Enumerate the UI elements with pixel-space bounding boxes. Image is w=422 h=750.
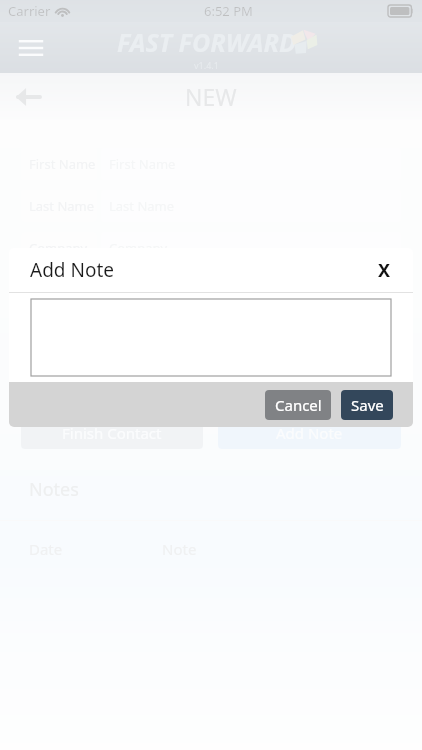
button[interactable]: Cancel (265, 390, 331, 420)
button[interactable]: Add Note (218, 416, 401, 449)
staticText: Note (162, 539, 197, 559)
staticText: Group (109, 365, 148, 383)
button[interactable]: Phone (101, 274, 401, 306)
staticText: Last Name (29, 197, 95, 215)
staticText: Date (29, 539, 63, 559)
staticText: Save (351, 395, 384, 415)
staticText: Group (29, 365, 68, 383)
staticText: Phone (29, 281, 69, 299)
staticText: Add Note (30, 257, 114, 283)
staticText: Add Note (276, 423, 343, 443)
staticText: X (378, 258, 391, 283)
staticText: v1.4.1 (194, 59, 219, 71)
staticText: Cancel (275, 395, 322, 415)
button[interactable]: Group (101, 358, 401, 390)
staticText: NEW (185, 81, 237, 112)
button[interactable]: Back (10, 79, 46, 115)
staticText: Carrier (8, 2, 51, 20)
button[interactable]: Menu (14, 31, 48, 65)
staticText: 6:52 PM (204, 2, 253, 20)
staticText: FAST FORWARD (117, 25, 296, 59)
button[interactable] (31, 299, 391, 376)
button[interactable]: Finish Contact (21, 416, 203, 449)
staticText: First Name (29, 155, 96, 173)
button[interactable]: Email (101, 316, 401, 348)
button[interactable]: Close (369, 255, 399, 285)
staticText: Email (29, 323, 63, 341)
staticText: Finish Contact (62, 423, 162, 443)
staticText: Phone (109, 281, 149, 299)
button[interactable]: Save (341, 390, 393, 420)
staticText: Notes (29, 477, 79, 502)
